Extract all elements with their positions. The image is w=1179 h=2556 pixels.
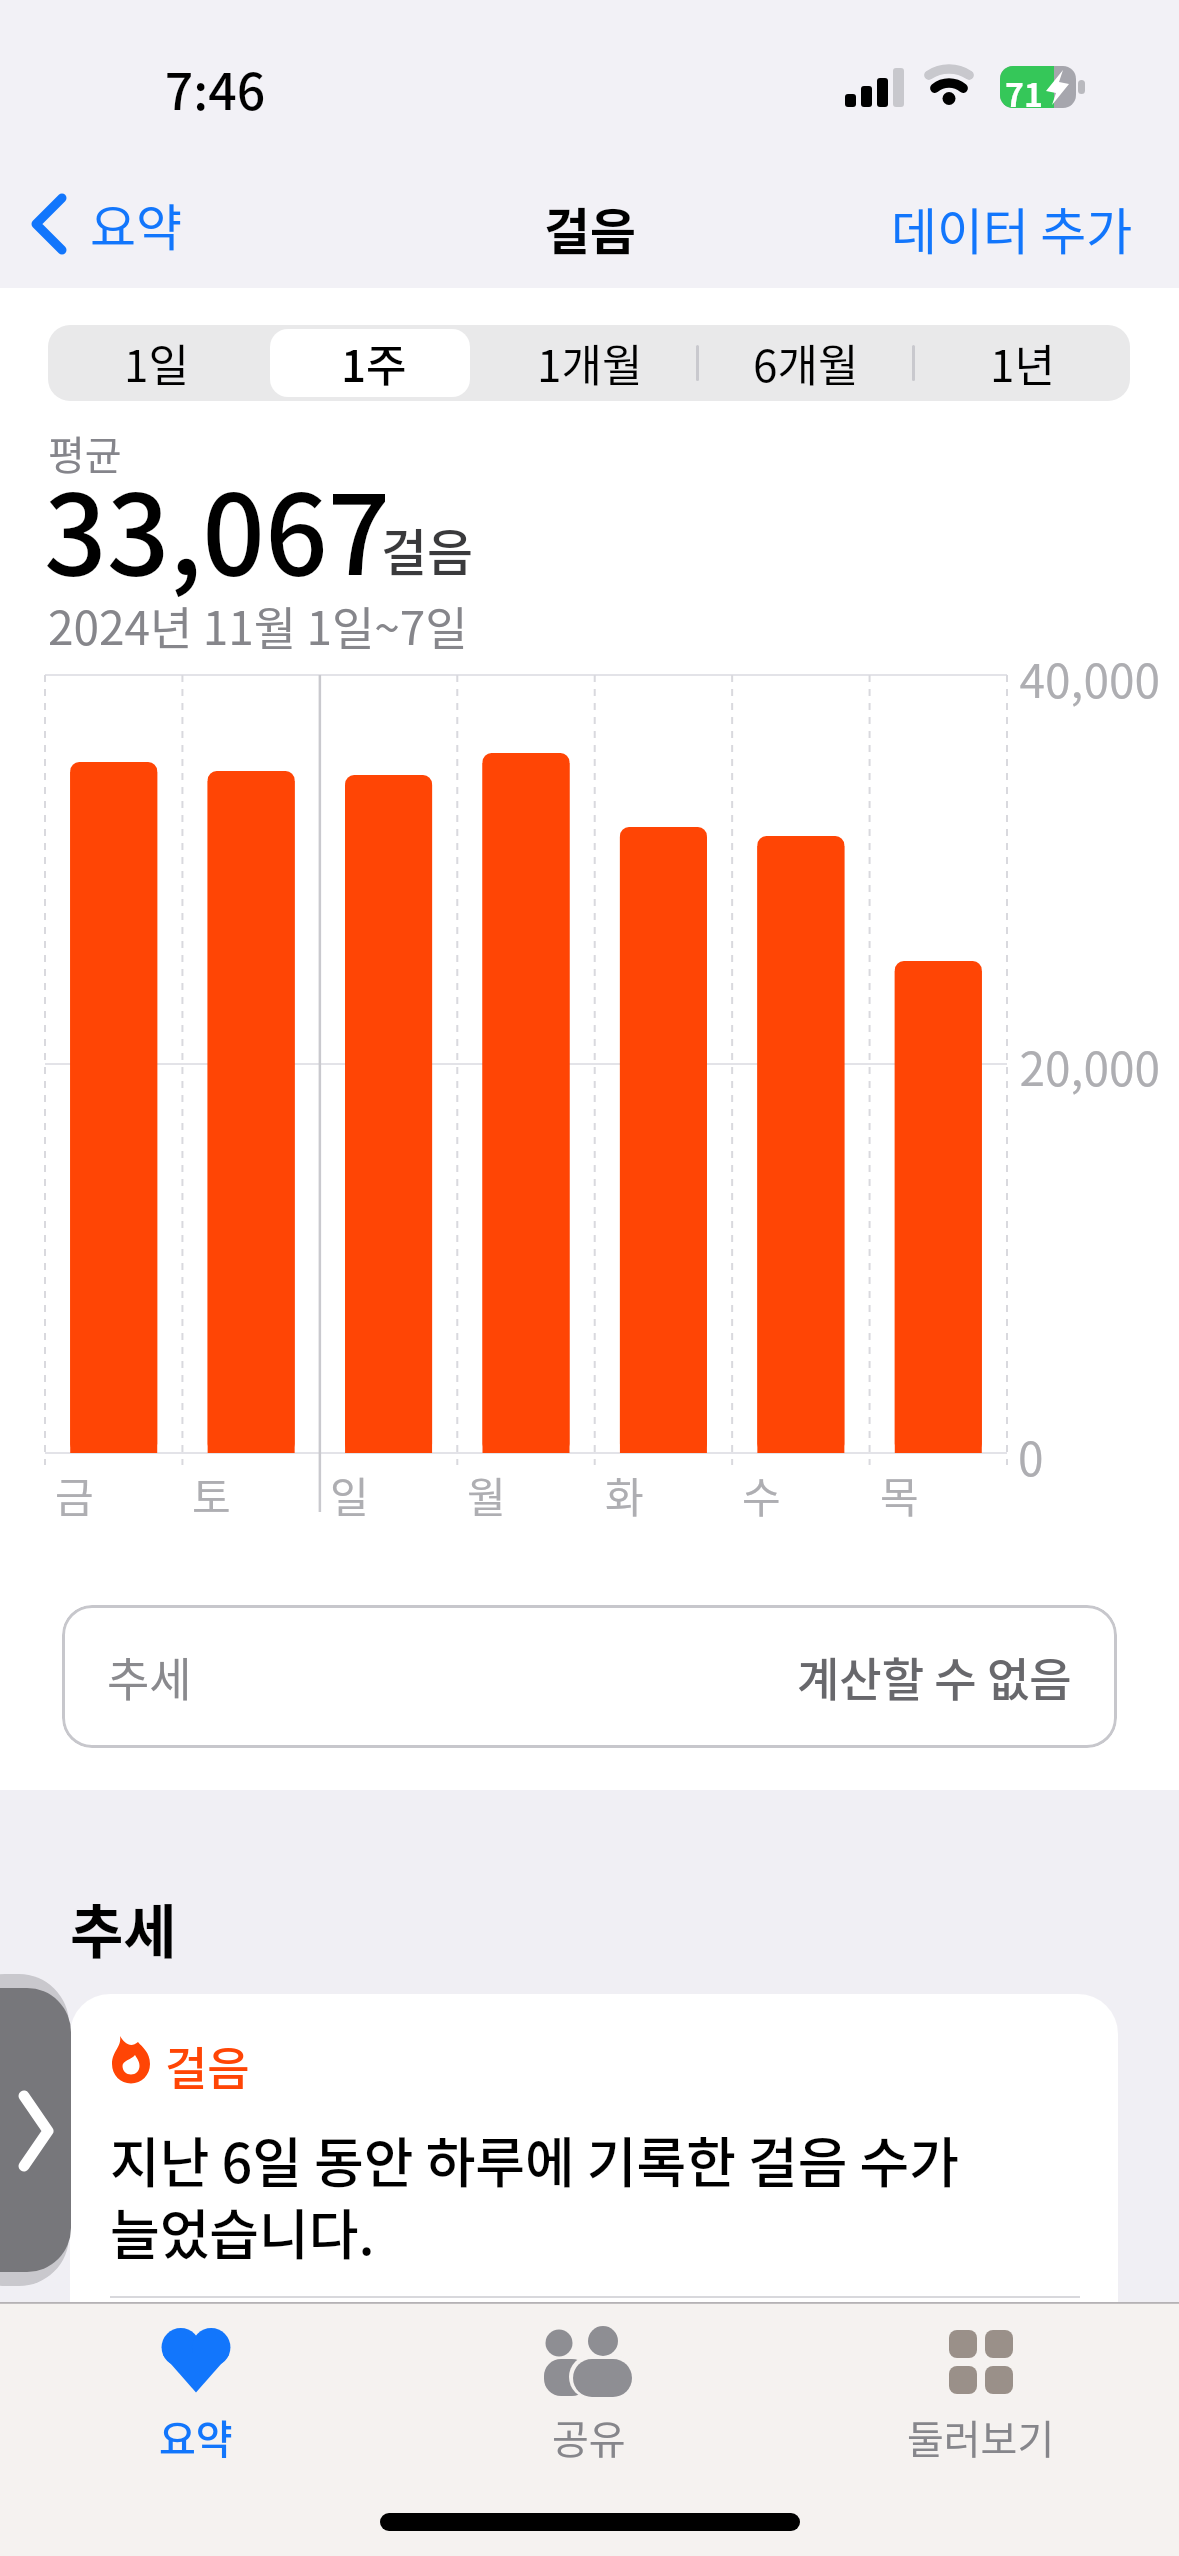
button[interactable]: 6개월 bbox=[698, 325, 914, 401]
staticText: 화 bbox=[605, 1464, 644, 1525]
staticText: 일 bbox=[330, 1464, 369, 1525]
staticText: 수 bbox=[742, 1464, 781, 1525]
staticText: 20,000 bbox=[1018, 1033, 1160, 1100]
staticText: 평균 bbox=[48, 424, 122, 482]
staticText: 목 bbox=[880, 1464, 919, 1525]
staticText: 지난 6일 동안 하루에 기록한 걸음 수가 늘었습니다. bbox=[110, 2120, 959, 2270]
staticText: 공유 bbox=[552, 2408, 626, 2466]
staticText: 추세 bbox=[70, 1886, 177, 1970]
staticText: 71 bbox=[1002, 70, 1046, 116]
button[interactable]: 둘러보기 bbox=[901, 2310, 1061, 2470]
staticText: 6개월 bbox=[753, 331, 859, 395]
staticText: 1일 bbox=[124, 331, 189, 395]
staticText: 1년 bbox=[990, 331, 1055, 395]
staticText: 걸음 bbox=[544, 192, 636, 264]
button[interactable]: 데이터 추가 bbox=[891, 192, 1133, 264]
staticText: 계산할 수 없음 bbox=[797, 1643, 1072, 1710]
button[interactable]: 1개월 bbox=[482, 325, 698, 401]
staticText: 요약 bbox=[159, 2408, 233, 2466]
staticText: 0 bbox=[1018, 1423, 1160, 1490]
staticText: 둘러보기 bbox=[907, 2408, 1055, 2466]
button[interactable]: 1년 bbox=[914, 325, 1130, 401]
button[interactable]: 요약 bbox=[20, 180, 190, 268]
staticText: 요약 bbox=[90, 188, 182, 260]
button[interactable]: 공유 bbox=[509, 2310, 669, 2470]
button[interactable]: 1일 bbox=[48, 325, 265, 401]
staticText: 1주 bbox=[341, 331, 407, 395]
button[interactable]: 요약 bbox=[116, 2310, 276, 2470]
button[interactable]: 1주 bbox=[265, 325, 482, 401]
staticText: 금 bbox=[55, 1464, 94, 1525]
staticText: 토 bbox=[192, 1464, 231, 1525]
staticText: 데이터 추가 bbox=[891, 192, 1133, 264]
staticText: 걸음 bbox=[165, 2032, 250, 2099]
staticText: 2024년 11월 1일~7일 bbox=[48, 592, 468, 659]
staticText: 걸음 bbox=[381, 513, 473, 585]
staticText: 33,067 bbox=[44, 447, 391, 606]
staticText: 추세 bbox=[107, 1643, 192, 1710]
staticText: 7:46 bbox=[150, 52, 280, 124]
button[interactable] bbox=[0, 1988, 71, 2272]
staticText: 월 bbox=[467, 1464, 506, 1525]
button[interactable]: 추세 bbox=[62, 1605, 1117, 1748]
staticText: 40,000 bbox=[1018, 645, 1160, 712]
button[interactable]: 걸음 bbox=[70, 1994, 1118, 2303]
staticText: 1개월 bbox=[537, 331, 643, 395]
